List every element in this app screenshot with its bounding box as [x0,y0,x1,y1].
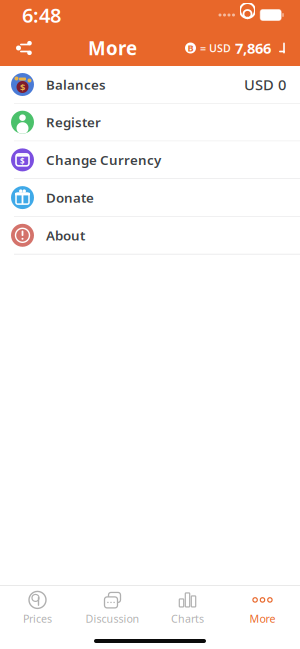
staticText: About [46,226,85,244]
staticText: Balances [46,76,106,93]
staticText: Change Currency [46,151,161,169]
staticText: Discussion [85,611,139,626]
button[interactable]: More [225,588,300,628]
staticText: Donate [46,189,94,206]
staticText: More [88,36,137,60]
button[interactable]: $ [0,66,300,104]
button[interactable]: Register [0,104,300,141]
staticText: B [187,42,193,54]
staticText: Prices [23,611,52,626]
staticText: $ [20,156,25,167]
staticText: = USD [200,41,231,55]
staticText: Register [46,113,101,131]
button[interactable]: Donate [0,179,300,217]
staticText: $ [20,81,25,94]
staticText: Charts [171,611,204,626]
button[interactable]: Prices [0,588,75,628]
staticText: 7,866 [235,38,271,58]
button[interactable]: Discussion [75,588,150,628]
staticText: More [249,611,275,626]
button[interactable]: Bitcoin price, 7,866 USD [177,30,300,66]
staticText: 6:48 [22,2,61,28]
button[interactable]: $ [0,141,300,179]
staticText: USD 0 [244,75,286,94]
button[interactable]: Charts [150,588,225,628]
button[interactable]: About [0,217,300,254]
button[interactable]: Share [0,30,48,66]
